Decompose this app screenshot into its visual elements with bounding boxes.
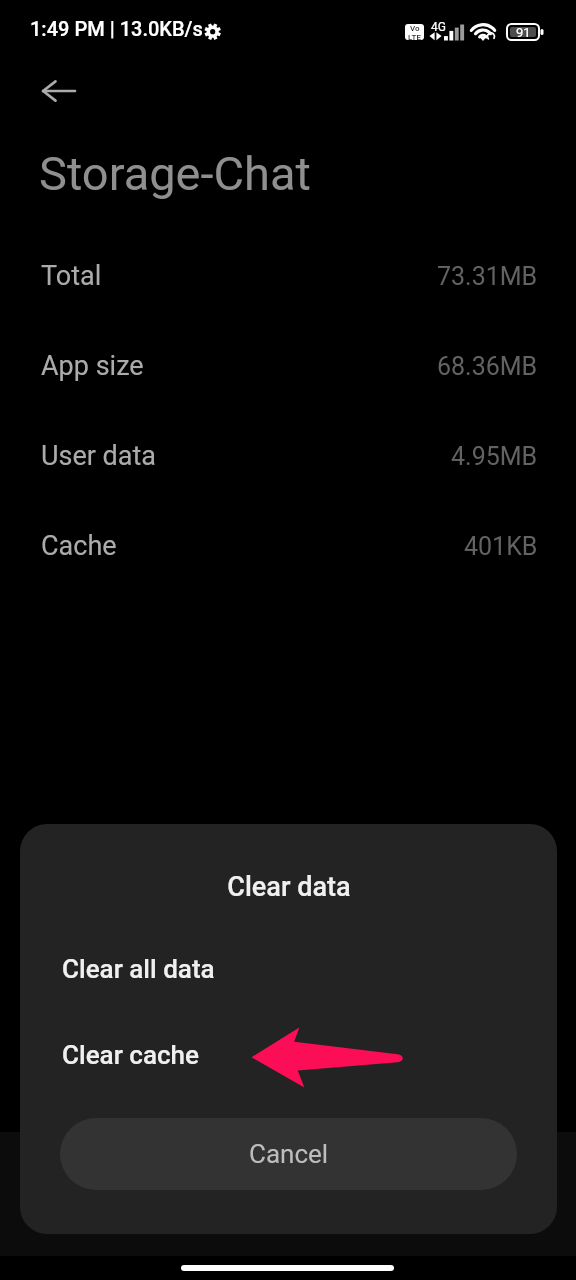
button[interactable]: App size	[0, 321, 576, 411]
staticText: 68.36MB	[437, 352, 538, 381]
staticText: 73.31MB	[437, 262, 538, 291]
button[interactable]: Back	[15, 63, 71, 119]
button[interactable]: Cache	[0, 501, 576, 591]
staticText: App size	[41, 350, 144, 382]
staticText: Clear data	[227, 871, 351, 903]
button[interactable]: Cancel	[60, 1118, 517, 1190]
button[interactable]: Total	[0, 231, 576, 321]
staticText: Cancel	[249, 1139, 329, 1169]
button[interactable]: Clear all data	[20, 938, 557, 1000]
staticText: Storage-Chat	[39, 146, 311, 201]
staticText: User data	[41, 440, 157, 472]
staticText: Vo	[410, 24, 420, 33]
staticText: Clear cache	[62, 1040, 199, 1070]
staticText: 401KB	[464, 532, 538, 561]
staticText: 4.95MB	[451, 442, 538, 471]
staticText: Cache	[41, 530, 117, 562]
button[interactable]: Clear cache	[20, 1024, 557, 1086]
staticText: Clear all data	[62, 954, 215, 984]
button[interactable]: User data	[0, 411, 576, 501]
staticText: 91	[516, 25, 531, 40]
staticText: 4G	[431, 20, 446, 34]
staticText: 1:49 PM | 13.0KB/s	[30, 17, 203, 40]
staticText: Total	[41, 260, 102, 292]
staticText: LTE	[408, 33, 421, 40]
